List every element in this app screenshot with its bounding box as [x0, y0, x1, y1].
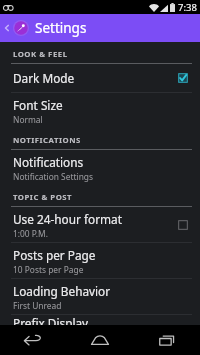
button[interactable]: Dark Mode	[0, 64, 200, 92]
staticText: Posts per Page	[13, 247, 96, 263]
staticText: Use 24-hour format	[13, 211, 122, 227]
button[interactable]: Recent apps	[133, 325, 200, 355]
staticText: 1:00 P.M.	[13, 228, 48, 239]
staticText: Font Size	[13, 97, 63, 113]
button[interactable]: Notifications	[0, 150, 200, 185]
button[interactable]: Font Size	[0, 93, 200, 128]
staticText: TOPIC & POST	[13, 192, 73, 203]
staticText: LOOK & FEEL	[13, 49, 68, 60]
button[interactable]: Back	[0, 325, 66, 355]
staticText: Dark Mode	[13, 70, 75, 86]
staticText: Normal	[13, 114, 43, 125]
staticText: First Unread	[13, 300, 62, 311]
staticText: 7:38	[178, 1, 197, 14]
button[interactable]: Loading Behavior	[0, 279, 200, 314]
staticText: Loading Behavior	[13, 283, 111, 299]
staticText: 10 Posts per Page	[13, 264, 84, 275]
button[interactable]: Home	[66, 325, 133, 355]
button[interactable]: Posts per Page	[0, 243, 200, 278]
button[interactable]: Use 24-hour format	[0, 207, 200, 242]
staticText: Settings	[35, 19, 87, 37]
button[interactable]: Prefix Display	[0, 315, 200, 325]
staticText: Notifications	[13, 154, 84, 170]
staticText: Notification Settings	[13, 171, 93, 182]
button[interactable]: Navigate up	[0, 14, 13, 42]
staticText: NOTIFICATIONS	[13, 135, 81, 146]
staticText: Prefix Display	[13, 315, 89, 325]
